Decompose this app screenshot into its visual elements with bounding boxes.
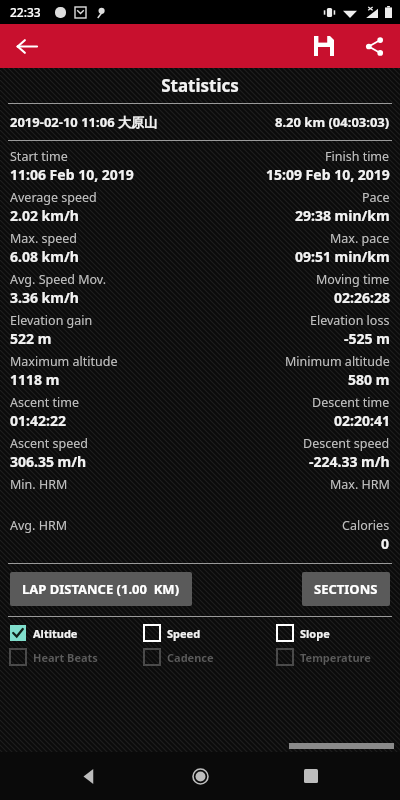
staticText: Average speed	[10, 189, 97, 206]
button[interactable]: Temperature	[267, 649, 400, 665]
button[interactable]: Back	[6, 26, 46, 66]
button[interactable]: SECTIONS	[302, 572, 390, 606]
button[interactable]: Share	[356, 28, 392, 64]
staticText: 09:51 min/km	[295, 247, 390, 265]
staticText: 02:26:28	[334, 288, 390, 306]
staticText: 29:38 min/km	[295, 206, 390, 224]
staticText: 02:20:41	[334, 411, 390, 429]
button[interactable]: Save	[306, 28, 342, 64]
button[interactable]: Heart Beats	[0, 649, 134, 665]
button[interactable]: Slope	[267, 625, 400, 641]
staticText: 6.08 km/h	[10, 247, 79, 265]
staticText: 306.35 m/h	[10, 452, 87, 470]
staticText: -224.33 m/h	[309, 452, 390, 470]
staticText: Elevation gain	[10, 312, 93, 329]
staticText: Maximum altitude	[10, 353, 118, 370]
staticText: Heart Beats	[33, 650, 98, 665]
button[interactable]: Speed	[134, 625, 267, 641]
staticText: Descent speed	[303, 435, 390, 452]
staticText: Calories	[342, 517, 390, 534]
button[interactable]: Altitude	[0, 625, 134, 641]
staticText: 522 m	[10, 329, 52, 347]
staticText: Slope	[300, 626, 330, 641]
staticText: Minimum altitude	[285, 353, 390, 370]
staticText: Ascent speed	[10, 435, 88, 452]
button[interactable]: Cadence	[134, 649, 267, 665]
staticText: 01:42:22	[10, 411, 66, 429]
staticText: 11:06 Feb 10, 2019	[10, 165, 134, 183]
staticText: Moving time	[316, 271, 390, 288]
staticText: Pace	[362, 189, 390, 206]
staticText: Altitude	[33, 626, 78, 641]
staticText: 2.02 km/h	[10, 206, 79, 224]
staticText: 3.36 km/h	[10, 288, 79, 306]
staticText: Temperature	[300, 650, 371, 665]
staticText: LAP DISTANCE (1.00 KM)	[22, 580, 180, 598]
staticText: Speed	[167, 626, 201, 641]
button[interactable]: LAP DISTANCE (1.00 KM)	[10, 572, 192, 606]
staticText: 2019-02-10 11:06 大原山	[10, 113, 157, 131]
staticText: Elevation loss	[310, 312, 390, 329]
staticText: Ascent time	[10, 394, 79, 411]
staticText: Min. HRM	[10, 476, 68, 493]
staticText: 22:33	[10, 4, 41, 20]
staticText: 580 m	[348, 370, 390, 388]
staticText: Avg. HRM	[10, 517, 68, 534]
staticText: Cadence	[167, 650, 214, 665]
staticText: Max. pace	[330, 230, 390, 247]
button[interactable]: Back	[67, 754, 111, 798]
staticText: 0	[381, 534, 390, 552]
button[interactable]: Home	[178, 754, 222, 798]
staticText: Avg. Speed Mov.	[10, 271, 107, 288]
staticText: 1118 m	[10, 370, 60, 388]
staticText: Max. HRM	[330, 476, 390, 493]
staticText: Statistics	[0, 74, 400, 97]
staticText: Start time	[10, 148, 68, 165]
staticText: SECTIONS	[314, 580, 378, 598]
staticText: 8.20 km (04:03:03)	[275, 113, 390, 131]
staticText: Descent time	[312, 394, 390, 411]
staticText: -525 m	[344, 329, 390, 347]
staticText: 15:09 Feb 10, 2019	[266, 165, 390, 183]
button[interactable]: Recents	[289, 754, 333, 798]
staticText: Finish time	[325, 148, 390, 165]
staticText: Max. speed	[10, 230, 78, 247]
